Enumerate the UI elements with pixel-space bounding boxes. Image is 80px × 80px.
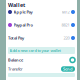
staticText: 4412 xyxy=(61,9,69,15)
button[interactable]: Send xyxy=(61,66,75,72)
staticText: 220 xyxy=(63,35,69,41)
button[interactable]: Apple Pay xyxy=(8,7,75,17)
button[interactable]: Paypal Pro xyxy=(8,20,75,30)
button[interactable]: Total Pay xyxy=(8,33,75,43)
staticText: Total Pay xyxy=(8,35,24,41)
staticText: 8821 xyxy=(61,22,69,28)
staticText: Add a new card to your wallet xyxy=(9,48,60,53)
staticText: Paypal Pro xyxy=(13,22,32,28)
staticText: Wallet xyxy=(8,1,25,9)
staticText: Apple Pay xyxy=(13,9,32,15)
staticText: Transfer xyxy=(8,66,23,72)
staticText: Send xyxy=(63,66,73,72)
staticText: Balance xyxy=(8,57,23,63)
